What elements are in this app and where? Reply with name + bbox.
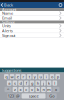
staticText: Sign out: [2, 33, 15, 38]
staticText: q: [5, 74, 7, 79]
staticText: v: [31, 87, 33, 92]
button[interactable]: x: [18, 87, 23, 92]
staticText: g: [31, 80, 33, 86]
button[interactable]: q: [4, 74, 9, 79]
button[interactable]: ^: [4, 87, 11, 92]
staticText: p: [57, 74, 59, 79]
staticText: c: [25, 87, 27, 92]
staticText: i: [46, 74, 47, 79]
staticText: Account: [2, 7, 16, 12]
button[interactable]: m: [47, 87, 51, 92]
staticText: d: [20, 80, 22, 86]
button[interactable]: Alerts: [0, 28, 64, 33]
staticText: n: [42, 87, 44, 92]
staticText: l: [54, 80, 55, 86]
staticText: u: [39, 74, 41, 79]
button[interactable]: Units: [0, 24, 64, 28]
button[interactable]: Go: [47, 93, 57, 98]
button[interactable]: k: [47, 80, 51, 86]
button[interactable]: a: [7, 80, 11, 86]
staticText: Settings: [2, 19, 15, 25]
staticText: space: [29, 93, 39, 98]
button[interactable]: l: [52, 80, 57, 86]
button[interactable]: space: [22, 93, 46, 98]
staticText: Suggestions: [1, 67, 21, 73]
staticText: r: [22, 74, 24, 79]
button[interactable]: c: [24, 87, 29, 92]
staticText: x: [20, 87, 22, 92]
button[interactable]: Email: [0, 16, 64, 21]
staticText: ^: [7, 87, 9, 92]
button[interactable]: w: [10, 74, 14, 79]
staticText: Name: [2, 10, 13, 16]
staticText: Email: [2, 15, 12, 21]
button[interactable]: x: [52, 87, 59, 92]
button[interactable]: v: [30, 87, 34, 92]
button[interactable]: y: [32, 74, 37, 79]
staticText: s: [14, 80, 16, 86]
button[interactable]: Sign out: [0, 33, 64, 38]
button[interactable]: 123: [7, 93, 14, 98]
staticText: Go: [49, 93, 54, 98]
button[interactable]: h: [35, 80, 40, 86]
button[interactable]: Search: [59, 3, 64, 6]
button[interactable]: @: [15, 93, 20, 98]
button[interactable]: o: [50, 74, 54, 79]
staticText: f: [26, 80, 27, 86]
button[interactable]: z: [13, 87, 17, 92]
staticText: x: [55, 87, 57, 92]
button[interactable]: j: [41, 80, 46, 86]
staticText: y: [34, 74, 36, 79]
button[interactable]: e: [15, 74, 20, 79]
staticText: Back: [4, 2, 13, 8]
staticText: m: [47, 87, 51, 92]
staticText: Alerts: [2, 28, 13, 33]
button[interactable]: n: [41, 87, 46, 92]
button[interactable]: g: [30, 80, 34, 86]
staticText: e: [17, 74, 19, 79]
button[interactable]: f: [24, 80, 29, 86]
staticText: @: [16, 93, 20, 98]
staticText: j: [43, 80, 44, 86]
button[interactable]: u: [38, 74, 43, 79]
button[interactable]: s: [13, 80, 17, 86]
button[interactable]: r: [21, 74, 26, 79]
staticText: a: [8, 80, 10, 86]
button[interactable]: p: [55, 74, 60, 79]
staticText: b: [37, 87, 39, 92]
button[interactable]: i: [44, 74, 48, 79]
staticText: Units: [2, 23, 11, 28]
staticText: w: [10, 74, 13, 79]
staticText: k: [48, 80, 50, 86]
staticText: h: [37, 80, 39, 86]
staticText: 123: [8, 93, 14, 98]
button[interactable]: Back: [0, 2, 13, 8]
button[interactable]: t: [27, 74, 31, 79]
button[interactable]: Name: [0, 11, 64, 16]
staticText: z: [14, 87, 16, 92]
button[interactable]: d: [18, 80, 23, 86]
staticText: o: [51, 74, 53, 79]
staticText: t: [29, 74, 30, 79]
button[interactable]: b: [35, 87, 40, 92]
